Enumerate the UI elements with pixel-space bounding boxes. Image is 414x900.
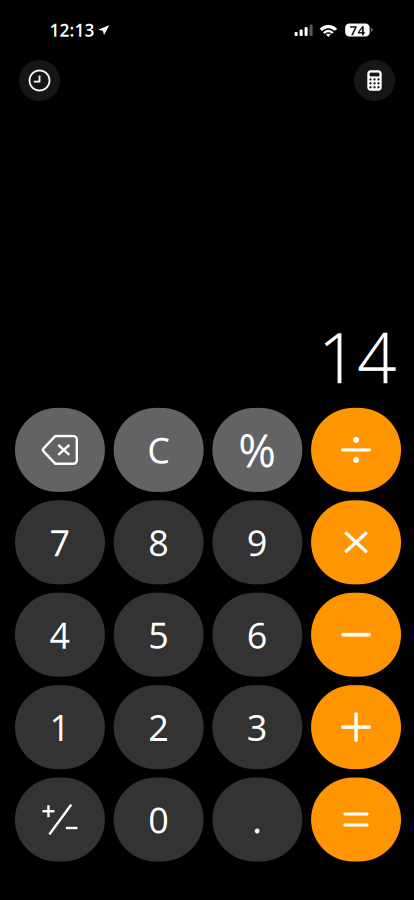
- staticText: 4: [49, 611, 70, 659]
- button[interactable]: 7: [15, 500, 105, 584]
- button[interactable]: Calculator mode: [354, 60, 395, 101]
- button[interactable]: Plus minus: [15, 777, 105, 861]
- button[interactable]: Equals: [311, 777, 401, 861]
- button[interactable]: 4: [15, 593, 105, 677]
- button[interactable]: 5: [114, 593, 204, 677]
- staticText: 74: [349, 21, 365, 39]
- button[interactable]: .: [212, 777, 302, 861]
- staticText: C: [147, 426, 170, 474]
- button[interactable]: Multiply: [311, 500, 401, 584]
- staticText: 12:13: [49, 18, 94, 41]
- button[interactable]: 1: [15, 685, 105, 769]
- button[interactable]: Delete: [15, 408, 105, 492]
- button[interactable]: C: [114, 408, 204, 492]
- staticText: 7: [49, 518, 70, 566]
- button[interactable]: History: [19, 60, 60, 101]
- staticText: 3: [247, 703, 268, 751]
- staticText: %: [238, 420, 276, 480]
- button[interactable]: %: [212, 408, 302, 492]
- staticText: 6: [247, 611, 268, 659]
- staticText: 1: [49, 703, 70, 751]
- button[interactable]: 2: [114, 685, 204, 769]
- staticText: 5: [148, 611, 169, 659]
- staticText: 2: [148, 703, 169, 751]
- button[interactable]: Subtract: [311, 593, 401, 677]
- button[interactable]: 3: [212, 685, 302, 769]
- staticText: 9: [247, 518, 268, 566]
- button[interactable]: Add: [311, 685, 401, 769]
- button[interactable]: 9: [212, 500, 302, 584]
- button[interactable]: Divide: [311, 408, 401, 492]
- button[interactable]: 8: [114, 500, 204, 584]
- staticText: 14: [318, 310, 397, 402]
- staticText: 0: [148, 796, 169, 843]
- button[interactable]: 0: [114, 777, 204, 861]
- button[interactable]: 6: [212, 593, 302, 677]
- staticText: .: [252, 796, 262, 843]
- staticText: 8: [148, 518, 169, 566]
